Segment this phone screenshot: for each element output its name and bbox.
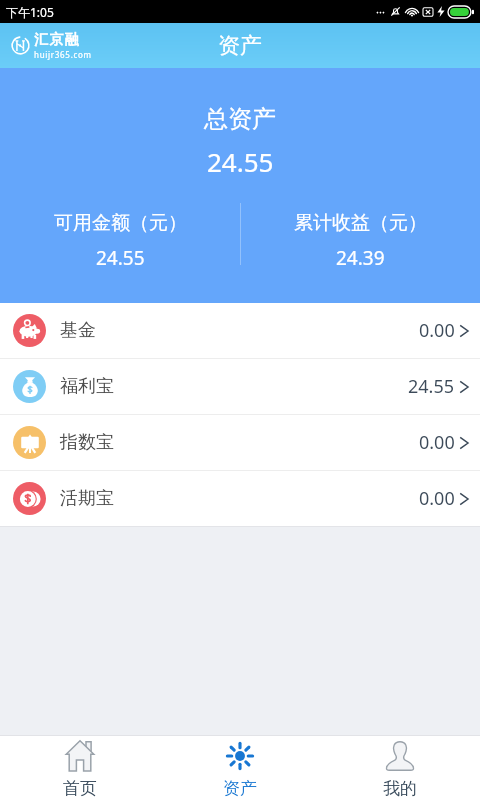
staticText: huijr365.com xyxy=(34,49,92,60)
button[interactable]: 活期宝 xyxy=(0,471,480,526)
staticText: 24.39 xyxy=(336,245,385,271)
staticText: 我的 xyxy=(383,778,417,799)
other: Charging xyxy=(437,6,445,17)
staticText: 资产 xyxy=(218,32,262,60)
staticText: 24.55 xyxy=(408,374,455,399)
staticText: 0.00 xyxy=(419,318,455,343)
other: No SIM xyxy=(423,7,433,17)
staticText: 0.00 xyxy=(419,430,455,455)
button[interactable]: 指数宝 xyxy=(0,415,480,470)
staticText: 可用金额（元） xyxy=(54,211,187,235)
staticText: 总资产 xyxy=(204,104,276,134)
other: Battery xyxy=(448,6,474,18)
staticText: 0.00 xyxy=(419,486,455,511)
staticText: 指数宝 xyxy=(60,431,114,454)
staticText: 汇京融 xyxy=(34,31,80,49)
staticText: ··· xyxy=(376,4,385,19)
other: Wi-Fi xyxy=(406,6,418,18)
staticText: 24.55 xyxy=(207,144,274,179)
button[interactable]: 首页 xyxy=(0,736,160,800)
other: Silent mode xyxy=(390,6,401,17)
staticText: 24.55 xyxy=(96,245,145,271)
button[interactable]: 基金 xyxy=(0,303,480,358)
staticText: 累计收益（元） xyxy=(294,211,427,235)
button[interactable]: 资产 xyxy=(160,736,320,800)
staticText: 福利宝 xyxy=(60,375,114,398)
staticText: 活期宝 xyxy=(60,487,114,510)
staticText: 首页 xyxy=(63,778,97,799)
button[interactable]: 福利宝 xyxy=(0,359,480,414)
staticText: 资产 xyxy=(223,778,257,799)
button[interactable]: 我的 xyxy=(320,736,480,800)
staticText: 下午1:05 xyxy=(6,4,54,20)
staticText: 基金 xyxy=(60,319,96,342)
